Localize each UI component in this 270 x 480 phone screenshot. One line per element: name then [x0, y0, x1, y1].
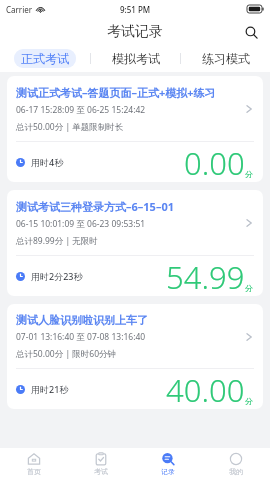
button[interactable]: 练习模式: [181, 49, 270, 68]
staticText: 分: [245, 169, 253, 179]
staticText: 首页: [27, 467, 41, 476]
button[interactable]: 模拟考试: [91, 49, 180, 68]
staticText: 分: [245, 396, 253, 406]
staticText: 总计89.99分 | 无限时: [16, 235, 98, 247]
staticText: 40.00: [166, 369, 245, 409]
staticText: 54.99: [166, 256, 245, 296]
staticText: 模拟考试: [112, 51, 160, 66]
staticText: 0.00: [184, 142, 245, 182]
staticText: 用时2分23秒: [31, 270, 83, 282]
staticText: 用时21秒: [31, 383, 69, 395]
staticText: 分: [245, 283, 253, 293]
staticText: 考试: [94, 467, 108, 476]
button[interactable]: Search: [240, 21, 262, 43]
staticText: 考试记录: [107, 23, 163, 41]
staticText: 测试正式考试–答题页面–正式+模拟+练习: [16, 85, 216, 100]
staticText: 正式考试: [21, 51, 69, 66]
staticText: 测试人脸识别啦识别上车了: [16, 313, 148, 327]
staticText: 我的: [229, 467, 243, 476]
staticText: 总计50.00分 | 限时60分钟: [16, 348, 117, 360]
button[interactable]: 测试正式考试–答题页面–正式+模拟+练习: [7, 76, 263, 182]
staticText: 06-17 15:28:09 至 06-25 15:24:42: [16, 104, 146, 116]
staticText: 总计50.00分 | 单题限制时长: [16, 121, 124, 133]
staticText: 记录: [161, 467, 175, 476]
button[interactable]: 考试: [67, 452, 134, 476]
staticText: 9:51 PM: [120, 4, 151, 15]
staticText: 07-01 13:16:40 至 07-08 13:16:40: [16, 331, 146, 343]
button[interactable]: 首页: [0, 452, 67, 476]
staticText: Carrier: [6, 4, 33, 15]
staticText: 06-15 10:01:09 至 06-23 09:53:51: [16, 218, 146, 230]
button[interactable]: 记录: [134, 452, 202, 476]
staticText: 测试考试三种登录方式–6–15–01: [16, 199, 174, 214]
staticText: 练习模式: [202, 51, 250, 66]
button[interactable]: 测试考试三种登录方式–6–15–01: [7, 190, 263, 296]
staticText: 用时4秒: [31, 156, 64, 168]
button[interactable]: 测试人脸识别啦识别上车了: [7, 304, 263, 409]
button[interactable]: 正式考试: [0, 49, 90, 68]
button[interactable]: 我的: [202, 452, 270, 476]
